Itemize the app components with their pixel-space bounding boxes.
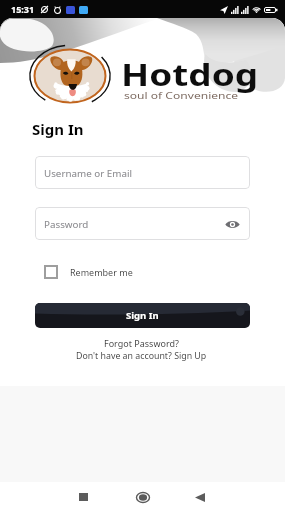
staticText: Hotdog [121, 54, 259, 95]
button[interactable]: Back [186, 483, 214, 511]
staticText: soul of Convenience [124, 89, 238, 102]
staticText: Sign In [32, 119, 84, 139]
button[interactable]: Home [129, 483, 157, 511]
button[interactable]: Sign In [35, 303, 250, 328]
button[interactable]: Username or Email [35, 156, 250, 189]
button[interactable]: Don't have an account? Sign Up [32, 350, 250, 362]
staticText: Forgot Password? [104, 337, 179, 349]
staticText: Don't have an account? Sign Up [76, 350, 207, 362]
button[interactable]: Remember me [44, 265, 133, 279]
staticText: Sign In [126, 309, 159, 322]
staticText: Username or Email [44, 167, 132, 179]
staticText: Remember me [70, 266, 133, 278]
button[interactable]: Password [35, 207, 250, 240]
staticText: Password [44, 218, 89, 230]
staticText: 15:31 [11, 3, 35, 15]
button[interactable]: Show password [223, 215, 241, 233]
button[interactable]: Recent apps [70, 483, 98, 511]
button[interactable]: Forgot Password? [32, 337, 250, 349]
